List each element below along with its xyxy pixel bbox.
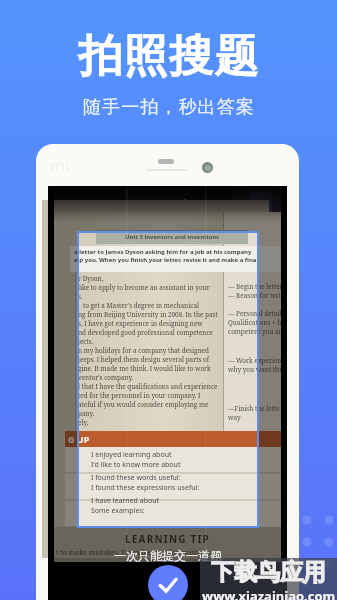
staticText: elp you. When you finish your letter, re… xyxy=(74,256,259,264)
staticText: n my holidays for a company that designe… xyxy=(78,346,209,355)
staticText: s. xyxy=(78,292,83,301)
staticText: I enjoyed learning about xyxy=(91,450,172,460)
staticText: a letter to James Dyson asking him for a… xyxy=(74,248,252,256)
staticText: l that I have the qualifications and exp… xyxy=(78,382,218,391)
staticText: ely, xyxy=(78,418,89,427)
staticText: why you want this xyxy=(228,365,285,374)
staticText: www.xiazainiao.com xyxy=(202,587,336,600)
staticText: r Dyson, xyxy=(78,274,104,283)
staticText: — End the letter xyxy=(228,433,278,442)
staticText: 下载鸟应用 xyxy=(211,558,326,587)
staticText: ted for the personnel in your company. I xyxy=(78,391,201,400)
staticText: I found these expressions useful: xyxy=(91,483,200,493)
staticText: — Personal details xyxy=(228,309,285,318)
staticText: ng from Beijing University in 2008. In t… xyxy=(78,310,218,319)
staticText: G UP xyxy=(68,433,90,445)
staticText: — Reason for wri xyxy=(228,291,281,300)
staticText: nd developed good professional competenc… xyxy=(78,328,213,337)
staticText: — Work experien xyxy=(228,356,282,365)
staticText: gine. It made me think. I would like to … xyxy=(78,364,211,373)
staticText: 拍照搜题 xyxy=(78,29,260,84)
staticText: Some examples: xyxy=(91,506,145,516)
staticText: 一次只能提交一道题 xyxy=(114,548,222,563)
staticText: jects. xyxy=(78,337,94,346)
staticText: I'd like to know more about xyxy=(91,460,181,470)
staticText: 随手一拍，秒出答案 xyxy=(83,96,255,119)
staticText: competent you are xyxy=(228,327,285,336)
staticText: Unit 3 inventors and inventions xyxy=(125,233,220,241)
staticText: I found these words useful: xyxy=(91,473,181,483)
staticText: like to apply to become an assistant in … xyxy=(78,283,210,292)
staticText: ventor's company. xyxy=(78,373,134,382)
staticText: Qualifications + h xyxy=(228,318,282,327)
staticText: s, I have got experience in designing ne… xyxy=(78,319,203,328)
staticText: way xyxy=(228,413,241,422)
staticText: — Applicant's s xyxy=(228,442,275,451)
staticText: LEARNING TIP xyxy=(125,532,210,546)
staticText: to get a Master's degree in mechanical xyxy=(78,301,199,310)
staticText: I have learned about xyxy=(91,496,160,506)
staticText: —Finish the lette xyxy=(228,404,280,413)
staticText: t to make mistakes. Everybody makes mist… xyxy=(56,548,214,558)
button[interactable]: Confirm xyxy=(148,565,188,600)
staticText: — Begin the letter xyxy=(228,282,283,291)
staticText: jeeps. I helped them design several part… xyxy=(78,355,210,364)
staticText: pany. xyxy=(78,409,95,418)
staticText: ateful if you would consider employing m… xyxy=(78,400,209,409)
